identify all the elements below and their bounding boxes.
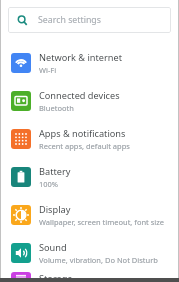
button[interactable]: Sound xyxy=(0,234,179,272)
staticText: Wi-Fi xyxy=(39,65,57,75)
button[interactable]: Storage xyxy=(0,272,179,282)
staticText: 100% xyxy=(39,179,59,189)
staticText: Volume, vibration, Do Not Disturb xyxy=(39,255,158,265)
other: Search xyxy=(17,15,28,26)
staticText: Storage xyxy=(39,272,73,282)
staticText: Apps & notifications xyxy=(39,127,126,140)
staticText: Battery xyxy=(39,165,71,178)
staticText: Recent apps, default apps xyxy=(39,141,130,151)
button[interactable]: Network & internet xyxy=(0,44,179,82)
staticText: Network & internet xyxy=(39,51,122,64)
button[interactable]: Battery xyxy=(0,158,179,196)
button[interactable]: Search xyxy=(8,7,171,33)
staticText: Sound xyxy=(39,241,67,254)
staticText: Wallpaper, screen timeout, font size xyxy=(39,217,165,227)
button[interactable]: Display xyxy=(0,196,179,234)
button[interactable]: Connected devices xyxy=(0,82,179,120)
staticText: Display xyxy=(39,203,71,216)
button[interactable]: Apps & notifications xyxy=(0,120,179,158)
staticText: Bluetooth xyxy=(39,103,74,113)
staticText: Search settings xyxy=(38,14,101,26)
staticText: Connected devices xyxy=(39,89,120,102)
